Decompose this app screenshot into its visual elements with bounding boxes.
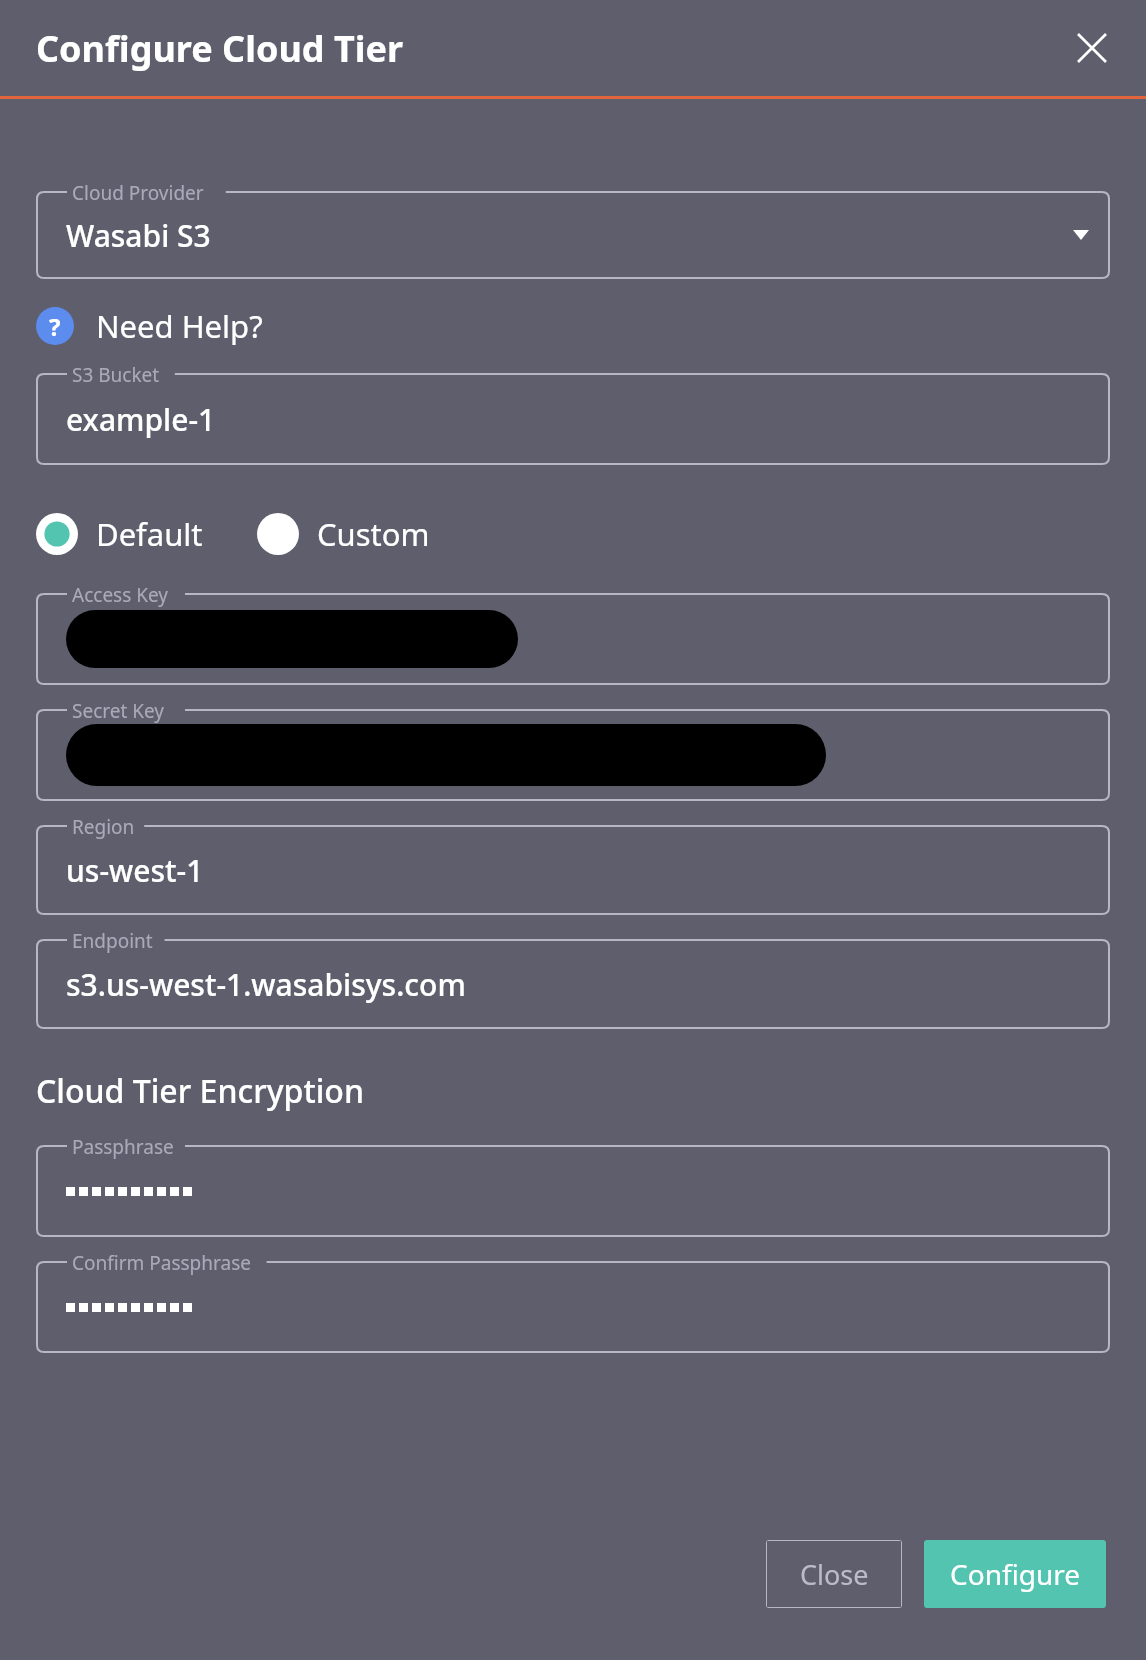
staticText: Configure [950,1555,1081,1593]
staticText: Need Help? [96,305,263,347]
button[interactable]: Confirm Passphrase [36,1261,1110,1353]
staticText: Passphrase [72,1134,174,1160]
button[interactable]: Endpoint [36,939,1110,1029]
button[interactable]: Custom [257,513,458,555]
staticText: Cloud Tier Encryption [36,1069,364,1113]
staticText: s3.us-west-1.wasabisys.com [66,964,466,1005]
button[interactable]: Configure [924,1540,1106,1608]
staticText: Custom [317,513,430,555]
staticText: Cloud Provider [72,180,204,206]
staticText: Region [72,814,135,840]
button[interactable]: Close dialog [1064,20,1120,76]
button[interactable]: Passphrase [36,1145,1110,1237]
staticText: S3 Bucket [72,362,160,388]
staticText: Default [96,513,203,555]
button[interactable]: Cloud Provider [36,191,1110,279]
staticText: us-west-1 [66,850,204,891]
button[interactable]: Access Key [36,593,1110,685]
staticText: ? [49,310,61,343]
button[interactable]: S3 Bucket [36,373,1110,465]
staticText: Close [800,1556,869,1593]
staticText: Secret Key [72,698,165,724]
staticText: Confirm Passphrase [72,1250,251,1276]
staticText: Wasabi S3 [66,215,211,256]
button[interactable]: Default [36,513,231,555]
button[interactable]: Region [36,825,1110,915]
staticText: example-1 [66,399,216,440]
staticText: Configure Cloud Tier [36,24,404,73]
staticText: Access Key [72,582,169,608]
button[interactable]: ? [36,305,263,347]
button[interactable]: Open provider list [1066,220,1096,250]
button[interactable]: Secret Key [36,709,1110,801]
staticText: Endpoint [72,928,153,954]
button[interactable]: Close [766,1540,902,1608]
